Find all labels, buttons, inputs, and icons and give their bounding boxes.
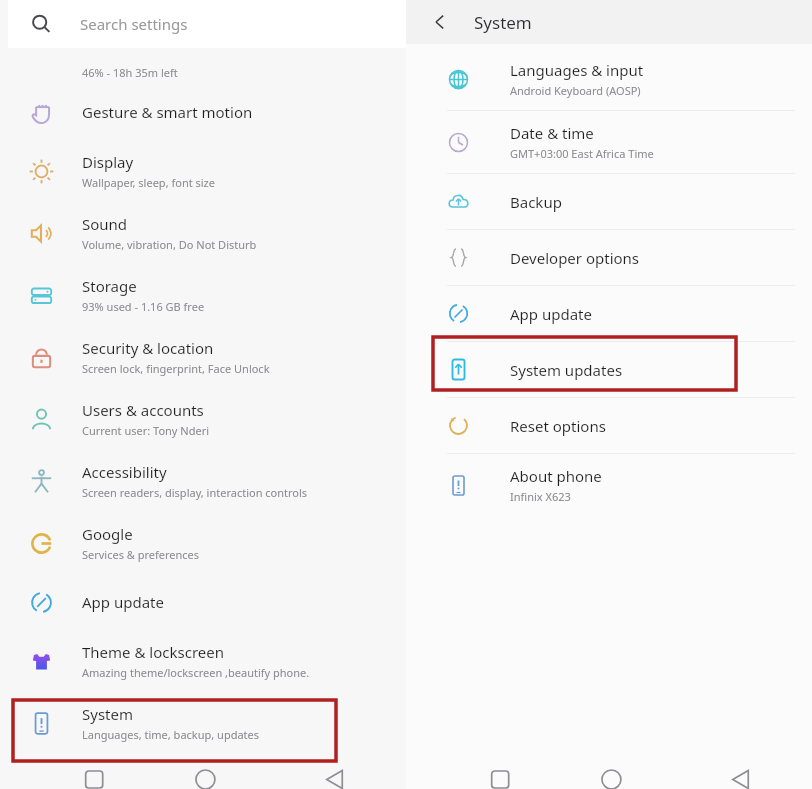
staticText: About phone [510, 466, 602, 486]
staticText: Storage [82, 276, 137, 296]
button[interactable]: System updates [406, 342, 812, 397]
button[interactable]: Storage [0, 264, 406, 326]
staticText: Users & accounts [82, 400, 204, 420]
staticText: GMT+03:00 East Africa Time [510, 146, 654, 161]
button[interactable]: About phone [406, 454, 812, 516]
staticText: Gesture & smart motion [82, 102, 253, 122]
staticText: Security & location [82, 338, 214, 358]
button[interactable]: App update [0, 574, 406, 630]
staticText: Languages & input [510, 60, 644, 80]
staticText: Search settings [80, 14, 188, 34]
staticText: Display [82, 152, 134, 172]
staticText: System [474, 11, 532, 34]
staticText: Screen lock, fingerprint, Face Unlock [82, 361, 270, 376]
staticText: Google [82, 524, 133, 544]
staticText: System [82, 704, 133, 724]
staticText: App update [510, 304, 592, 324]
staticText: System updates [510, 360, 623, 380]
staticText: Developer options [510, 248, 640, 268]
button[interactable]: Theme & lockscreen [0, 630, 406, 692]
staticText: 93% used - 1.16 GB free [82, 299, 205, 314]
staticText: Amazing theme/lockscreen ,beautify phone… [82, 665, 310, 680]
button[interactable]: Backup [406, 174, 812, 229]
staticText: App update [82, 592, 164, 612]
button[interactable]: Reset options [406, 398, 812, 453]
button[interactable]: System [0, 692, 406, 754]
staticText: 46% - 18h 35m left [82, 65, 178, 80]
button[interactable]: Google [0, 512, 406, 574]
button[interactable]: App update [406, 286, 812, 341]
staticText: Services & preferences [82, 547, 200, 562]
staticText: Android Keyboard (AOSP) [510, 83, 641, 98]
staticText: Backup [510, 192, 562, 212]
button[interactable]: Back [406, 0, 474, 44]
staticText: Languages, time, backup, updates [82, 727, 260, 742]
button[interactable]: Security & location [0, 326, 406, 388]
button[interactable]: Sound [0, 202, 406, 264]
staticText: Volume, vibration, Do Not Disturb [82, 237, 257, 252]
staticText: Date & time [510, 123, 594, 143]
button[interactable]: Languages & input [406, 48, 812, 110]
button[interactable]: Display [0, 140, 406, 202]
staticText: Reset options [510, 416, 606, 436]
staticText: Sound [82, 214, 128, 234]
button[interactable]: Users & accounts [0, 388, 406, 450]
staticText: Screen readers, display, interaction con… [82, 485, 308, 500]
staticText: Accessibility [82, 462, 167, 482]
button[interactable]: Developer options [406, 230, 812, 285]
button[interactable]: Search settings [8, 0, 406, 48]
button[interactable]: Accessibility [0, 450, 406, 512]
button[interactable]: Date & time [406, 111, 812, 173]
staticText: Infinix X623 [510, 489, 571, 504]
button[interactable]: Gesture & smart motion [0, 84, 406, 140]
staticText: Theme & lockscreen [82, 642, 224, 662]
staticText: Current user: Tony Nderi [82, 423, 210, 438]
staticText: Wallpaper, sleep, font size [82, 175, 215, 190]
